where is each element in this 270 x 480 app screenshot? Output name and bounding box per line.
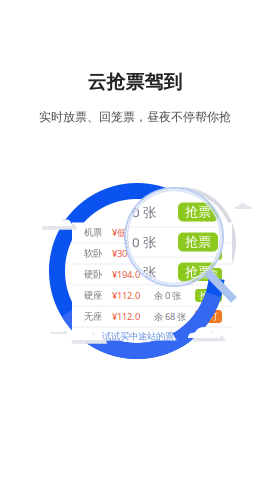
staticText: 余 68 张 [154,310,186,323]
staticText: ¥低价 [58,203,92,221]
staticText: 抢票 [185,204,211,220]
staticText: 无座 [84,311,102,322]
staticText: 抢票 [185,264,211,280]
button[interactable]: 抢票 [195,247,222,260]
staticText: ¥112.0 [112,310,140,323]
staticText: 云抢票驾到 [87,70,182,93]
button[interactable]: 抢票 [195,268,222,281]
staticText: 余 0 张 [154,247,181,260]
staticText: 硬卧 [84,269,102,280]
staticText: 抢票 [199,227,217,238]
staticText: ¥低价 [112,226,135,239]
staticText: 预订 [199,311,217,322]
staticText: ¥112.0 [58,293,102,311]
staticText: 硬座 [84,290,102,301]
staticText: 软卧 [84,248,102,259]
staticText: 机票 [84,227,102,238]
staticText: 实时放票、回笼票，昼夜不停帮你抢 [39,110,231,124]
staticText: 余 0 张 [116,263,156,281]
staticText: ¥301.0 [58,233,102,251]
staticText: 抢票 [199,290,217,301]
staticText: ¥194.0 [112,268,140,281]
staticText: 抢票 [199,248,217,259]
staticText: ¥301.0 [112,247,140,260]
staticText: 余 0 张 [116,293,156,311]
staticText: 余 0 张 [154,268,181,281]
staticText: 试试买中途站的票先上车 [102,331,201,342]
staticText: 抢票 [199,269,217,280]
button[interactable]: 抢票 [195,289,222,302]
staticText: 余 0 张 [154,226,181,239]
staticText: 余 0 张 [154,289,181,302]
staticText: 抢票 [185,294,211,310]
staticText: 余 0 张 [116,203,156,221]
staticText: 抢票 [185,234,211,250]
staticText: ¥112.0 [112,289,140,302]
button[interactable]: 预订 [195,310,222,323]
staticText: ¥194.0 [58,263,102,281]
button[interactable]: 抢票 [195,226,222,239]
staticText: 余 0 张 [116,233,156,251]
